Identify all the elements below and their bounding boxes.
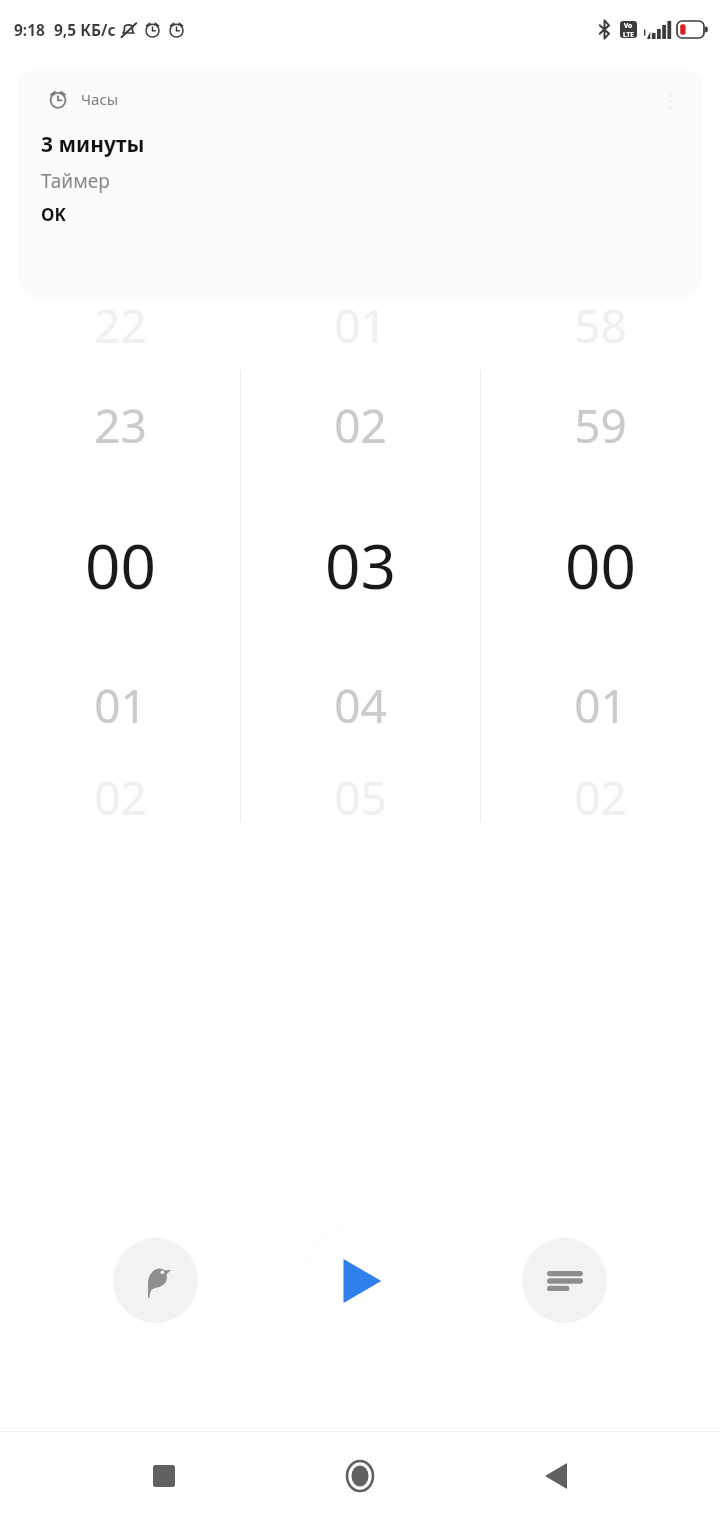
staticText: 59: [574, 394, 627, 457]
staticText: 01: [334, 294, 387, 357]
button[interactable]: 58: [481, 285, 720, 830]
staticText: 58: [574, 294, 627, 357]
staticText: Таймер: [41, 168, 110, 194]
button[interactable]: Back: [524, 1444, 588, 1508]
staticText: 02: [94, 766, 147, 829]
button[interactable]: OK: [41, 203, 66, 226]
staticText: 02: [574, 766, 627, 829]
staticText: 23: [94, 394, 147, 457]
staticText: LTE: [623, 30, 634, 38]
button[interactable]: Часы: [17, 68, 703, 298]
staticText: Часы: [81, 89, 119, 109]
staticText: 9:18: [14, 19, 45, 40]
staticText: 3 минуты: [41, 130, 145, 159]
staticText: 02: [334, 394, 387, 457]
staticText: 01: [574, 674, 627, 737]
button[interactable]: Home: [328, 1444, 392, 1508]
staticText: 01: [94, 674, 147, 737]
button[interactable]: 01: [241, 285, 480, 830]
staticText: Vo: [624, 21, 633, 30]
staticText: 9,5 КБ/с: [54, 19, 116, 40]
staticText: 22: [94, 294, 147, 357]
button[interactable]: Ringtone: [113, 1238, 198, 1323]
button[interactable]: Presets: [522, 1238, 607, 1323]
button[interactable]: 22: [0, 285, 240, 830]
staticText: 03: [325, 523, 396, 607]
button[interactable]: Recents: [132, 1444, 196, 1508]
staticText: 04: [334, 674, 387, 737]
button[interactable]: Start timer: [304, 1224, 417, 1337]
staticText: 05: [334, 766, 387, 829]
staticText: 00: [85, 523, 156, 607]
staticText: 00: [565, 523, 636, 607]
